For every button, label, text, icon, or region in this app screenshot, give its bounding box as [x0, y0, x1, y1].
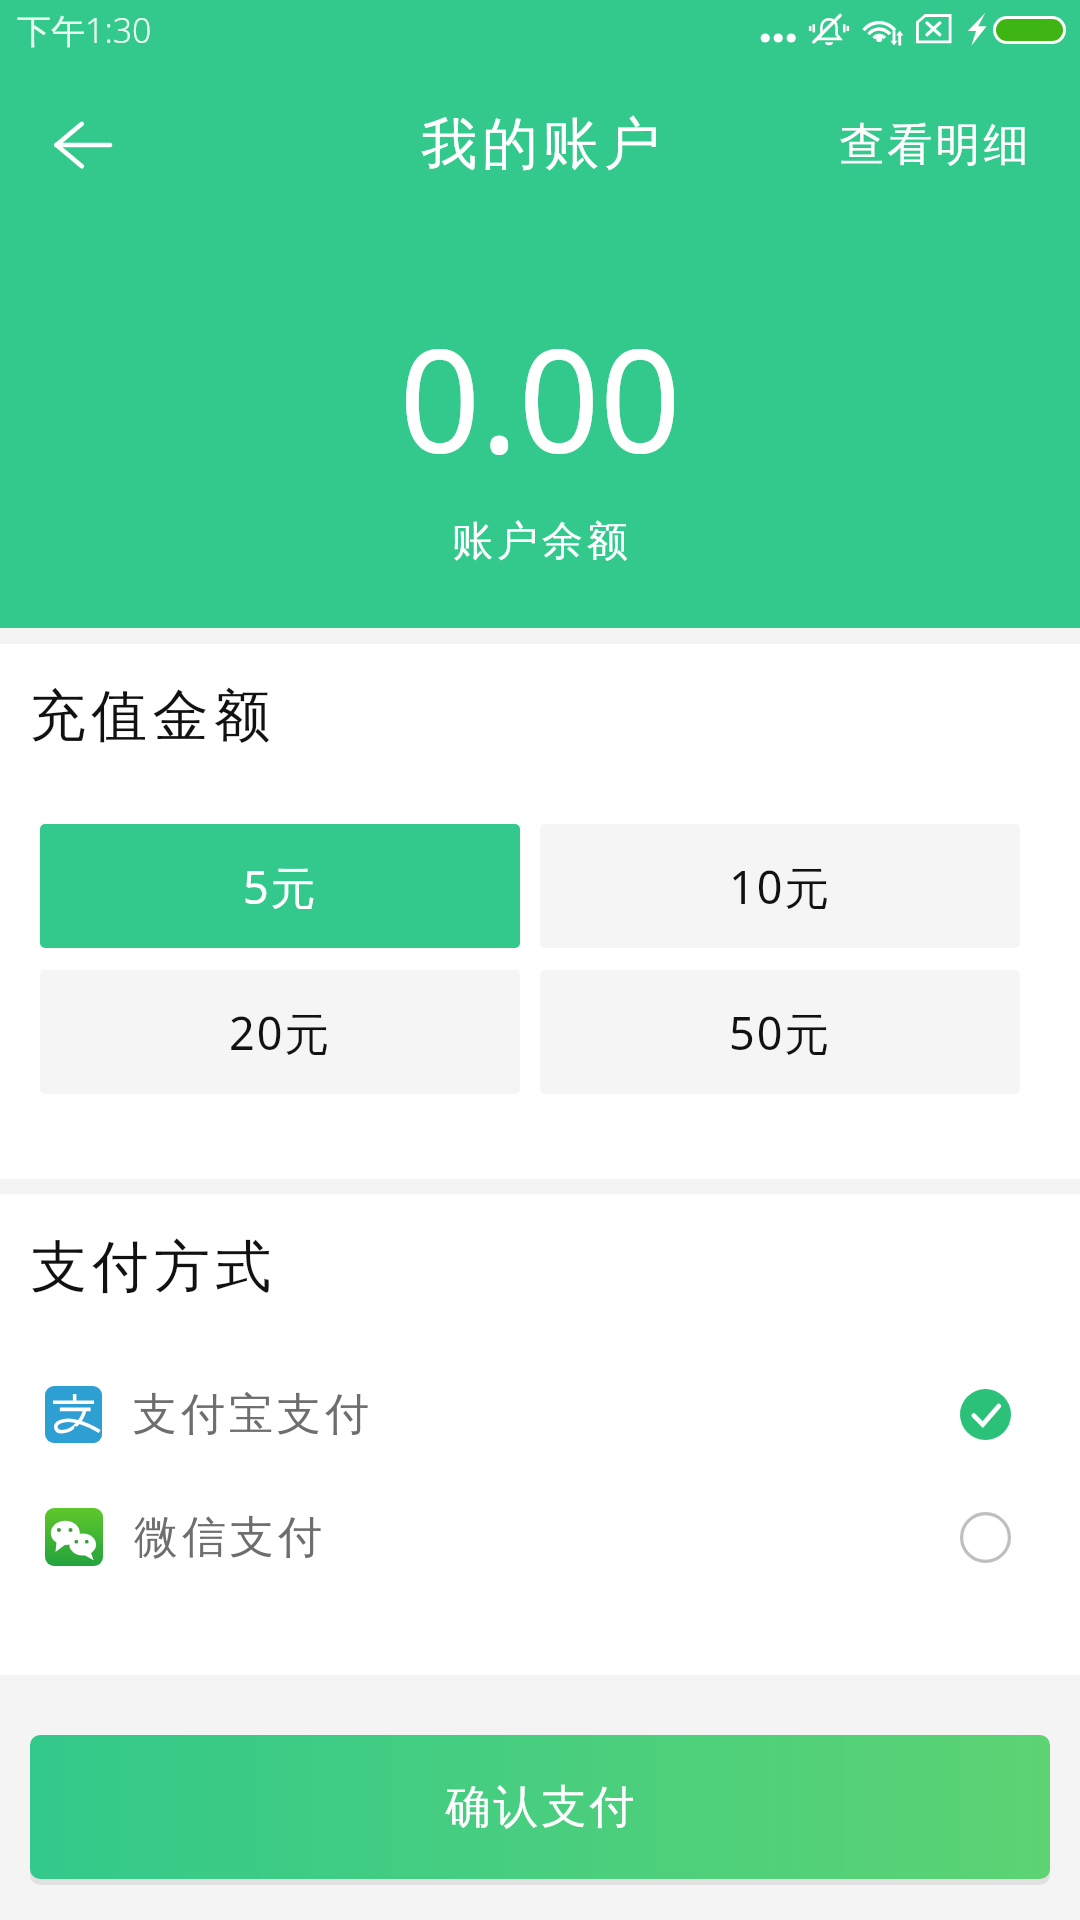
staticText: 下午1:30 [17, 7, 152, 53]
button[interactable]: 支付宝支付 [0, 1366, 1080, 1462]
staticText: 5元 [243, 856, 318, 917]
button[interactable]: 10元 [540, 824, 1020, 948]
button[interactable]: 5元 [40, 824, 520, 948]
button[interactable]: Back [20, 82, 146, 208]
staticText: 20元 [229, 1002, 332, 1063]
staticText: 微信支付 [132, 1510, 324, 1565]
staticText: 0.00 [0, 301, 1080, 494]
button[interactable]: 微信支付 [0, 1489, 1080, 1585]
staticText: 10元 [729, 856, 832, 917]
staticText: 账户余额 [2, 516, 1080, 568]
button[interactable]: 确认支付 [30, 1735, 1050, 1879]
button[interactable]: 20元 [40, 970, 520, 1094]
staticText: 查看明细 [838, 117, 1030, 174]
button[interactable]: 查看明细 [808, 82, 1080, 208]
staticText: 确认支付 [444, 1779, 636, 1836]
staticText: 50元 [729, 1002, 832, 1063]
staticText: 我的账户 [3, 109, 1080, 180]
staticText: 支付宝支付 [131, 1387, 371, 1442]
staticText: 充值金额 [27, 681, 273, 752]
button[interactable]: 50元 [540, 970, 1020, 1094]
staticText: 支付方式 [28, 1232, 274, 1303]
